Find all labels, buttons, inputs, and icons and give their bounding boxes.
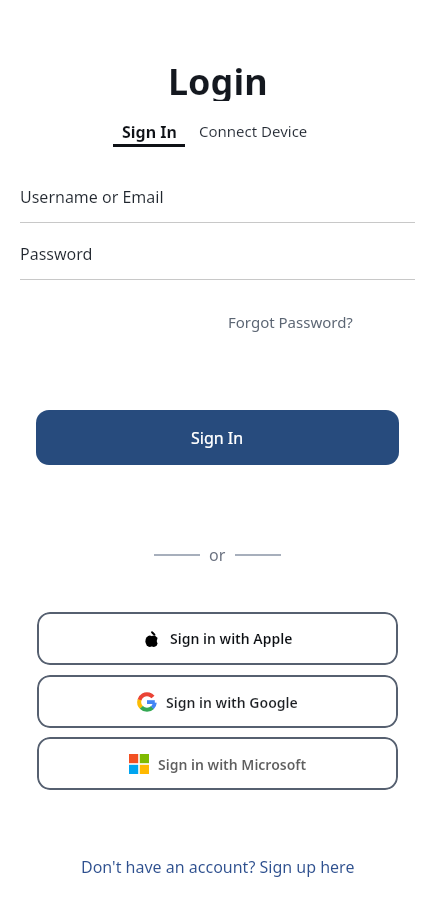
- staticText: Sign in with Google: [166, 693, 298, 712]
- staticText: Connect Device: [199, 121, 308, 141]
- button[interactable]: Sign in with Microsoft: [37, 737, 398, 790]
- staticText: Sign In: [122, 121, 177, 143]
- staticText: Password: [20, 243, 93, 265]
- button[interactable]: Sign in with Google: [37, 675, 398, 728]
- button[interactable]: Sign In: [113, 121, 185, 147]
- staticText: Don't have an account? Sign up here: [81, 856, 355, 878]
- button[interactable]: Sign In: [36, 410, 399, 465]
- button[interactable]: Don't have an account? Sign up here: [81, 856, 355, 878]
- button[interactable]: Connect Device: [199, 121, 308, 141]
- staticText: Login: [168, 57, 268, 101]
- button[interactable]: Sign in with Apple: [37, 612, 398, 665]
- staticText: Forgot Password?: [228, 312, 353, 332]
- button[interactable]: Forgot Password?: [228, 312, 353, 332]
- staticText: Sign In: [191, 427, 244, 449]
- staticText: Sign in with Microsoft: [158, 755, 307, 774]
- staticText: Username or Email: [20, 186, 164, 208]
- staticText: Sign in with Apple: [170, 629, 293, 648]
- staticText: or: [209, 544, 226, 566]
